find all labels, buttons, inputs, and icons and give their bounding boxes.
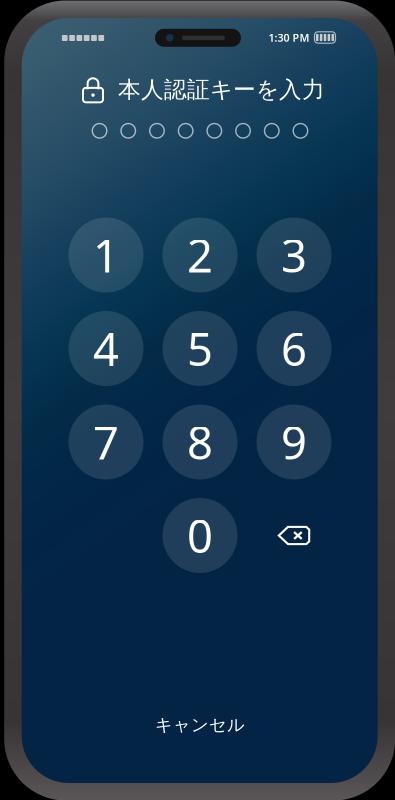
staticText: 3 [281,225,307,285]
staticText: 4 [93,318,119,379]
staticText: 7 [93,412,119,472]
staticText: 本人認証キーを入力 [118,76,325,104]
button[interactable]: 5 [162,311,237,386]
button[interactable]: 1 [68,217,143,292]
staticText: 9 [281,412,307,472]
button[interactable]: 8 [162,404,237,479]
staticText: 1:30 PM [268,30,309,45]
button[interactable]: 3 [256,217,331,292]
button[interactable]: Delete [256,498,331,573]
button[interactable]: 6 [256,311,331,386]
button[interactable]: 4 [68,311,143,386]
button[interactable]: 7 [68,404,143,479]
staticText: 8 [187,412,213,472]
staticText: 0 [187,505,213,566]
button[interactable]: キャンセル [145,708,255,742]
button[interactable]: 0 [162,498,237,573]
button[interactable]: 9 [256,404,331,479]
staticText: 5 [187,318,213,379]
staticText: 6 [281,318,307,379]
button[interactable]: 2 [162,217,237,292]
staticText: 1 [93,225,119,285]
staticText: キャンセル [155,714,245,736]
staticText: 2 [187,225,213,285]
